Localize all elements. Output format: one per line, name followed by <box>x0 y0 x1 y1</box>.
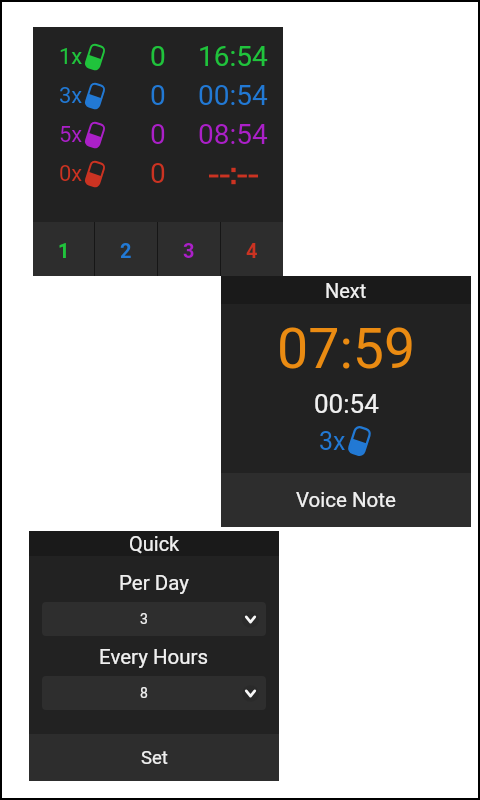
staticText: 16:54 <box>198 40 268 73</box>
staticText: Quick <box>129 532 180 555</box>
staticText: 07:59 <box>277 317 416 382</box>
other: Expand <box>242 685 259 702</box>
button[interactable]: Quick <box>29 531 279 556</box>
staticText: 3x <box>319 427 346 456</box>
staticText: Voice Note <box>296 488 396 512</box>
button[interactable]: Next <box>221 276 471 304</box>
staticText: 2 <box>120 239 132 262</box>
staticText: 3 <box>140 611 148 627</box>
staticText: Set <box>141 747 168 769</box>
button[interactable]: 3 <box>158 222 220 276</box>
staticText: 3 <box>183 239 195 262</box>
staticText: Every Hours <box>99 645 209 669</box>
staticText: 1x <box>59 44 83 70</box>
staticText: 5x <box>59 122 83 148</box>
staticText: 00:54 <box>314 389 379 419</box>
button[interactable]: 0x <box>33 154 283 193</box>
button[interactable]: 1x <box>33 37 283 76</box>
staticText: 3x <box>59 83 83 109</box>
button[interactable]: 3 <box>42 602 266 636</box>
staticText: Per Day <box>119 571 189 595</box>
staticText: 0 <box>150 157 166 190</box>
staticText: 00:54 <box>198 79 268 112</box>
button[interactable]: 3x <box>33 76 283 115</box>
button[interactable]: 4 <box>221 222 283 276</box>
button[interactable]: 1 <box>33 222 94 276</box>
button[interactable]: 5x <box>33 115 283 154</box>
button[interactable]: 2 <box>95 222 157 276</box>
staticText: 8 <box>140 685 148 701</box>
other: Expand <box>242 611 259 628</box>
button[interactable]: Set <box>29 734 279 781</box>
staticText: 0 <box>150 118 166 151</box>
staticText: Next <box>325 279 367 302</box>
button[interactable]: 8 <box>42 676 266 710</box>
staticText: 0 <box>150 79 166 112</box>
staticText: 1 <box>58 239 70 262</box>
staticText: 0x <box>59 161 83 187</box>
staticText: 08:54 <box>198 118 268 151</box>
staticText: 0 <box>150 40 166 73</box>
button[interactable]: Voice Note <box>221 473 471 527</box>
staticText: 4 <box>246 239 258 262</box>
